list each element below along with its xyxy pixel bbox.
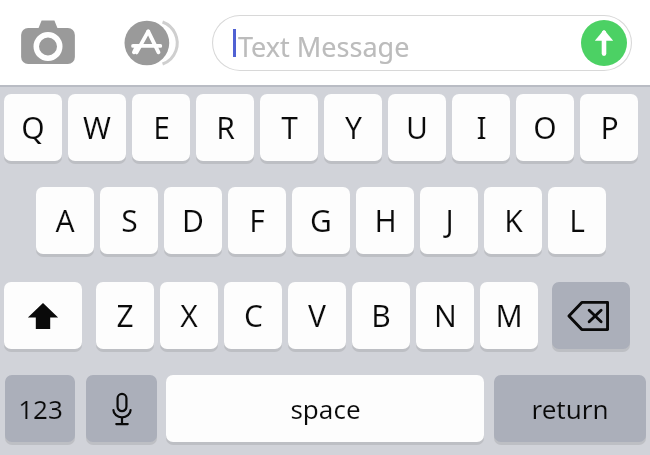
staticText: Y: [345, 107, 362, 148]
staticText: M: [495, 295, 523, 336]
staticText: Z: [116, 295, 134, 336]
button[interactable]: D: [164, 187, 222, 254]
button[interactable]: U: [388, 94, 446, 161]
button[interactable]: T: [260, 94, 318, 161]
button[interactable]: P: [580, 94, 638, 161]
button[interactable]: N: [416, 282, 474, 349]
staticText: D: [182, 200, 204, 241]
button[interactable]: Backspace: [552, 282, 630, 349]
staticText: W: [83, 107, 111, 148]
staticText: O: [533, 107, 557, 148]
button[interactable]: E: [132, 94, 190, 161]
staticText: C: [244, 295, 263, 336]
staticText: L: [569, 200, 585, 241]
button[interactable]: W: [68, 94, 126, 161]
button[interactable]: O: [516, 94, 574, 161]
staticText: return: [531, 391, 609, 426]
button[interactable]: R: [196, 94, 254, 161]
button[interactable]: Q: [4, 94, 62, 161]
staticText: I: [476, 107, 487, 148]
button[interactable]: space: [166, 375, 484, 442]
button[interactable]: G: [292, 187, 350, 254]
staticText: K: [504, 200, 523, 241]
button[interactable]: 123: [5, 375, 75, 442]
button[interactable]: return: [494, 375, 646, 442]
staticText: H: [374, 200, 397, 241]
staticText: U: [406, 107, 428, 148]
button[interactable]: Shift: [4, 282, 82, 349]
staticText: S: [121, 200, 138, 241]
button[interactable]: J: [420, 187, 478, 254]
button[interactable]: I: [452, 94, 510, 161]
staticText: Text Message: [238, 28, 410, 65]
staticText: A: [55, 200, 75, 241]
button[interactable]: H: [356, 187, 414, 254]
button[interactable]: F: [228, 187, 286, 254]
button[interactable]: K: [484, 187, 542, 254]
staticText: F: [249, 200, 265, 241]
button[interactable]: C: [224, 282, 282, 349]
button[interactable]: X: [160, 282, 218, 349]
staticText: G: [310, 200, 332, 241]
button[interactable]: A: [36, 187, 94, 254]
staticText: space: [290, 391, 361, 426]
staticText: B: [371, 295, 391, 336]
button[interactable]: L: [548, 187, 606, 254]
staticText: E: [153, 107, 170, 148]
staticText: 123: [18, 391, 63, 426]
button[interactable]: App Store: [120, 17, 176, 69]
button[interactable]: V: [288, 282, 346, 349]
button[interactable]: Text Message: [212, 15, 632, 71]
button[interactable]: Camera: [16, 18, 80, 68]
staticText: Q: [21, 107, 45, 148]
staticText: J: [445, 200, 454, 241]
staticText: N: [434, 295, 457, 336]
button[interactable]: Dictate: [86, 375, 157, 442]
button[interactable]: S: [100, 187, 158, 254]
button[interactable]: B: [352, 282, 410, 349]
button[interactable]: Z: [96, 282, 154, 349]
staticText: T: [281, 107, 298, 148]
staticText: R: [216, 107, 235, 148]
staticText: X: [180, 295, 198, 336]
button[interactable]: Send: [580, 19, 628, 67]
staticText: V: [308, 295, 326, 336]
button[interactable]: M: [480, 282, 538, 349]
staticText: P: [600, 107, 619, 148]
button[interactable]: Y: [324, 94, 382, 161]
